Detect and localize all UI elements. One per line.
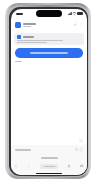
button[interactable] <box>40 164 58 169</box>
button[interactable]: Reply <box>74 23 77 26</box>
button[interactable] <box>15 48 83 58</box>
button[interactable]: Reply <box>11 19 87 30</box>
button[interactable] <box>11 154 87 161</box>
button[interactable]: Refresh <box>80 148 83 151</box>
button[interactable]: Reader view <box>75 148 78 151</box>
button[interactable]: Tabs <box>80 164 84 168</box>
button[interactable]: Share <box>67 164 71 168</box>
button[interactable]: Back <box>14 164 18 168</box>
button[interactable]: More options <box>80 23 83 26</box>
button[interactable] <box>14 33 84 45</box>
button[interactable]: Forward <box>27 164 31 168</box>
